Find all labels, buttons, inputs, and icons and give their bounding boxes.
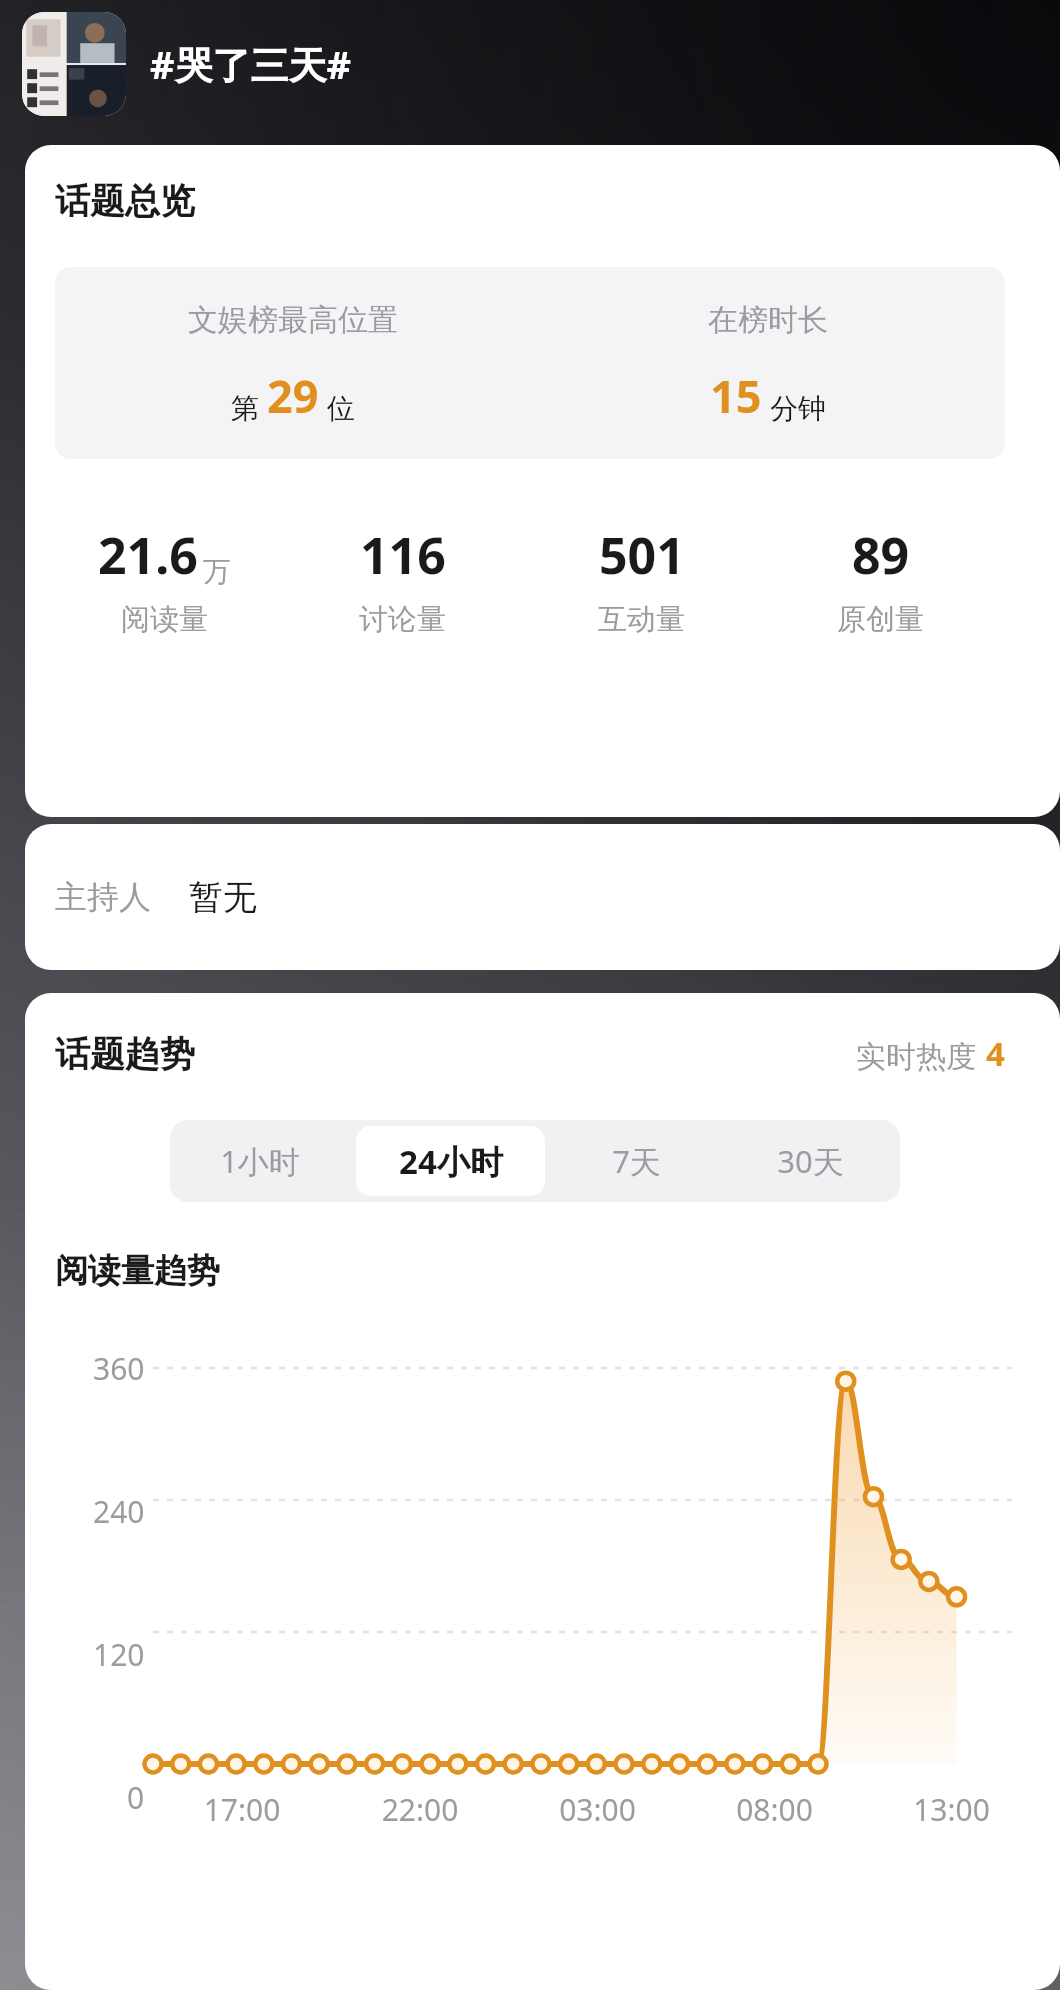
staticText: 阅读量 xyxy=(121,601,208,638)
staticText: 分钟 xyxy=(770,391,826,426)
staticText: 17:00 xyxy=(153,1789,331,1830)
staticText: 89 xyxy=(852,521,910,589)
button[interactable]: 7天 xyxy=(557,1126,715,1196)
staticText: 讨论量 xyxy=(359,601,446,638)
staticText: 1小时 xyxy=(220,1140,300,1182)
staticText: 在榜时长 xyxy=(708,301,828,339)
staticText: 22:00 xyxy=(331,1789,509,1830)
staticText: 24小时 xyxy=(399,1139,503,1184)
staticText: 0 xyxy=(127,1777,145,1818)
staticText: 7天 xyxy=(612,1140,661,1182)
button[interactable]: 30天 xyxy=(727,1126,894,1196)
staticText: #哭了三天# xyxy=(150,38,352,90)
button[interactable]: 文娱榜最高位置 xyxy=(55,267,530,459)
staticText: 互动量 xyxy=(598,601,685,638)
staticText: 文娱榜最高位置 xyxy=(188,301,398,339)
staticText: 原创量 xyxy=(837,601,924,638)
staticText: 08:00 xyxy=(686,1789,863,1830)
button[interactable]: 在榜时长 xyxy=(530,267,1005,459)
button[interactable]: 主持人 xyxy=(25,824,1060,970)
button[interactable]: 实时热度 xyxy=(856,1031,1005,1076)
staticText: 主持人 xyxy=(55,877,151,917)
staticText: 位 xyxy=(327,391,355,426)
staticText: 501 xyxy=(599,521,685,589)
staticText: 第 xyxy=(231,391,259,426)
staticText: 话题总览 xyxy=(55,179,195,223)
staticText: 360 xyxy=(93,1348,145,1389)
staticText: 120 xyxy=(93,1634,145,1675)
button[interactable]: 1小时 xyxy=(176,1126,344,1196)
staticText: 21.6 xyxy=(98,521,198,589)
button[interactable]: 21.6 xyxy=(45,521,283,638)
button[interactable]: 116 xyxy=(283,521,522,638)
staticText: 240 xyxy=(93,1491,145,1532)
staticText: 116 xyxy=(360,521,446,589)
staticText: 话题趋势 xyxy=(55,1032,195,1076)
staticText: 暂无 xyxy=(189,876,257,919)
staticText: 13:00 xyxy=(863,1789,1040,1830)
staticText: 29 xyxy=(267,365,319,426)
staticText: 03:00 xyxy=(509,1789,686,1830)
button[interactable]: Topic thumbnail xyxy=(22,12,126,116)
button[interactable]: 89 xyxy=(761,521,1000,638)
staticText: 阅读量趋势 xyxy=(55,1250,220,1292)
staticText: 实时热度 xyxy=(856,1038,976,1076)
staticText: 4 xyxy=(986,1031,1005,1076)
staticText: 15 xyxy=(710,365,762,426)
staticText: 30天 xyxy=(777,1140,844,1182)
button[interactable]: 24小时 xyxy=(356,1126,545,1196)
button[interactable]: 501 xyxy=(522,521,761,638)
staticText: 万 xyxy=(203,554,231,589)
